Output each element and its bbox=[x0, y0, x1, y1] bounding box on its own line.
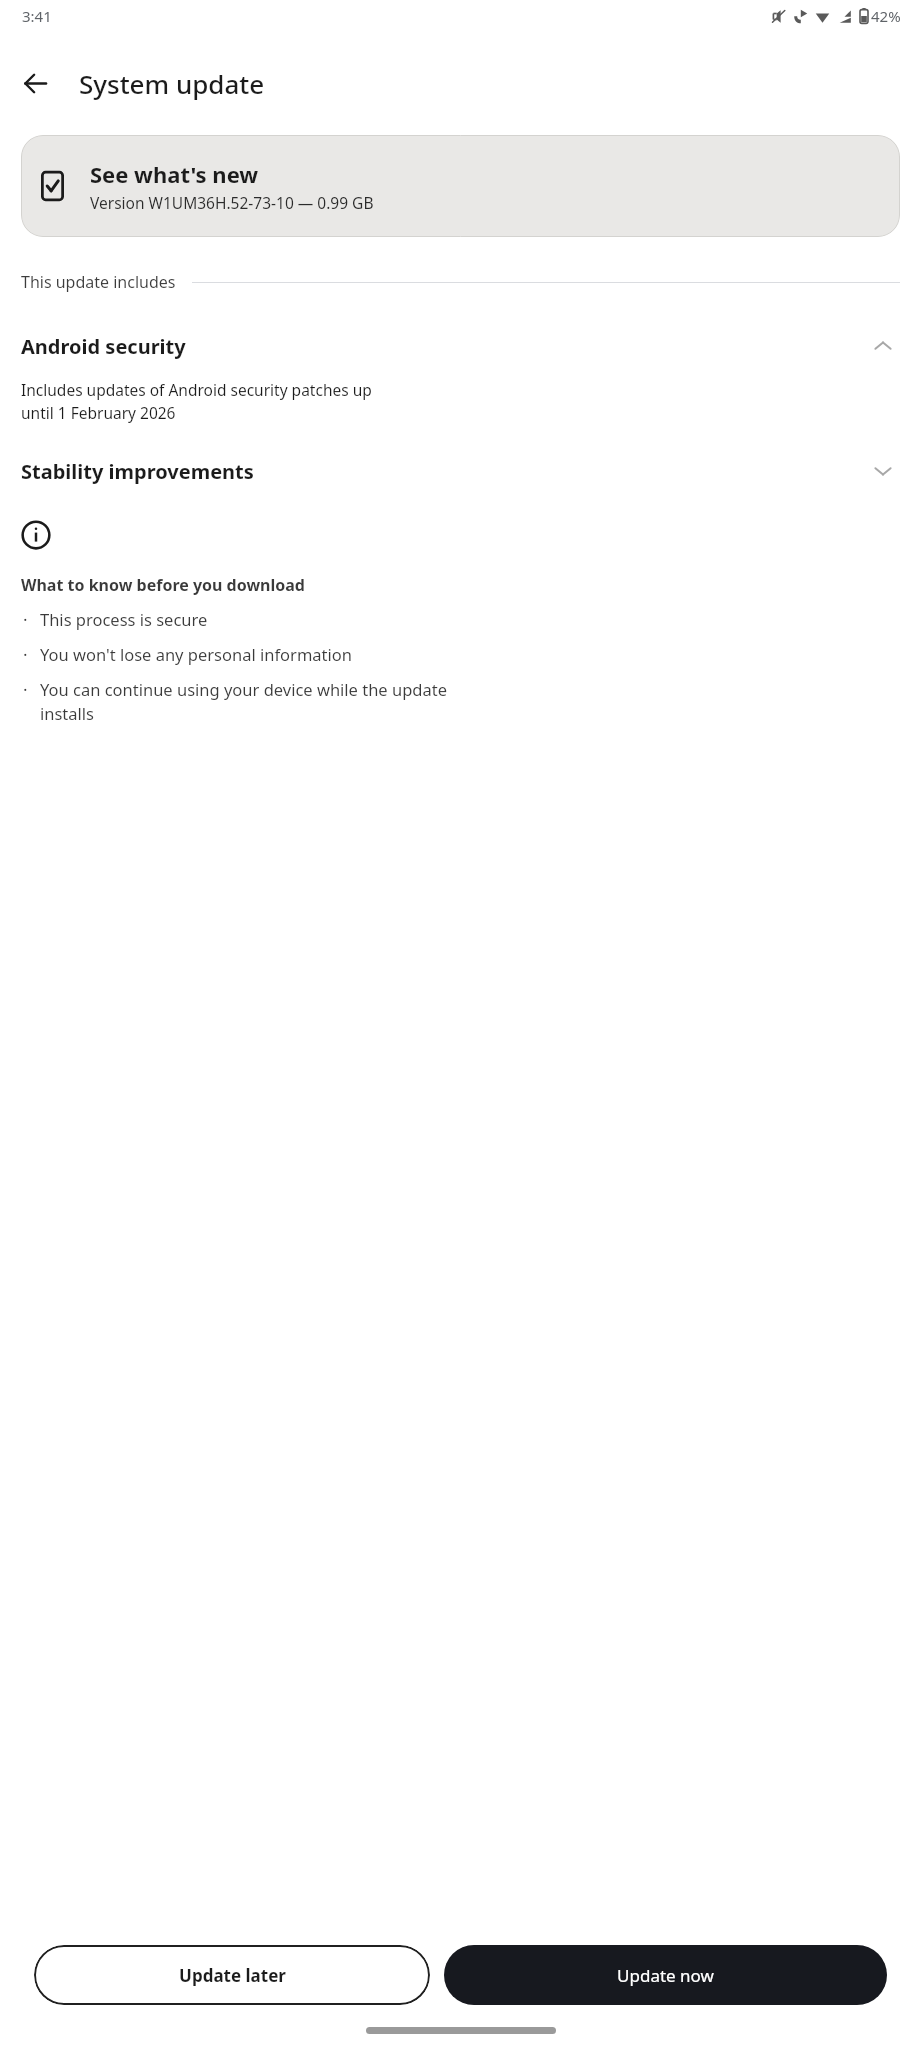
button[interactable]: Back bbox=[12, 60, 58, 106]
button[interactable]: See what's new bbox=[21, 135, 900, 237]
staticText: · bbox=[23, 643, 28, 666]
staticText: Update later bbox=[179, 1964, 286, 1987]
staticText: This update includes bbox=[21, 271, 176, 293]
staticText: · bbox=[23, 608, 28, 631]
staticText: You won't lose any personal information bbox=[40, 643, 352, 665]
other: Collapse bbox=[866, 329, 900, 363]
staticText: System update bbox=[79, 66, 265, 101]
button[interactable]: Android security bbox=[0, 319, 921, 373]
staticText: Includes updates of Android security pat… bbox=[21, 379, 372, 424]
staticText: 42% bbox=[871, 6, 901, 26]
staticText: See what's new bbox=[90, 159, 259, 189]
staticText: Stability improvements bbox=[21, 458, 866, 485]
staticText: Version W1UM36H.52-73-10 — 0.99 GB bbox=[90, 192, 374, 213]
staticText: Android security bbox=[21, 333, 866, 360]
button[interactable]: Update now bbox=[444, 1945, 887, 2005]
staticText: You can continue using your device while… bbox=[40, 678, 447, 725]
button[interactable]: Update later bbox=[34, 1945, 430, 2005]
staticText: 3:41 bbox=[22, 6, 52, 26]
other: Expand bbox=[866, 454, 900, 488]
staticText: Update now bbox=[617, 1964, 714, 1987]
button[interactable]: Stability improvements bbox=[0, 444, 921, 498]
staticText: · bbox=[23, 678, 28, 701]
staticText: This process is secure bbox=[40, 608, 208, 630]
staticText: What to know before you download bbox=[21, 574, 305, 596]
